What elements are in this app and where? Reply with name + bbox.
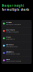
staticText: Stages and schedule	[6, 60, 21, 62]
staticText: Heart Rate	[6, 29, 15, 31]
staticText: Move, Exercise, Stand	[6, 24, 21, 25]
staticText: Daily distance	[6, 38, 15, 40]
button[interactable]: Steps	[1, 35, 32, 42]
button[interactable]: Workouts	[1, 42, 32, 49]
staticText: Effort and zones	[6, 46, 18, 47]
staticText: Reflect and breathe	[6, 53, 20, 55]
button[interactable]: Mindfulness	[1, 49, 32, 57]
staticText: Sleep	[6, 58, 10, 60]
staticText: Activity	[6, 22, 12, 23]
staticText: Sharper insight	[2, 4, 24, 7]
button[interactable]: Activity	[1, 20, 32, 27]
staticText: Steps	[6, 36, 11, 38]
button[interactable]: Sleep	[1, 57, 32, 64]
button[interactable]: Heart Rate	[1, 27, 32, 35]
staticText: for multiple charts	[2, 8, 29, 11]
staticText: Mindfulness	[6, 51, 14, 53]
staticText: Workouts	[6, 44, 14, 46]
staticText: Resting and walking	[6, 31, 19, 33]
